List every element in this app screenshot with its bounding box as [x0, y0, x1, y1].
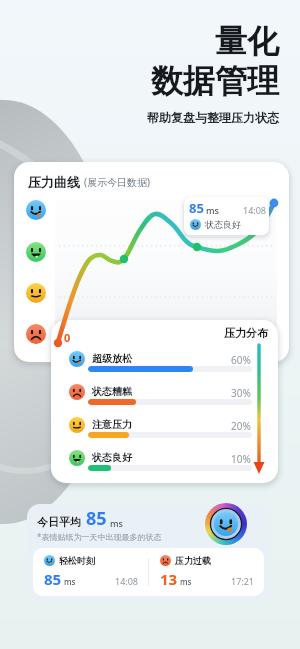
staticText: 量化: [215, 21, 279, 61]
staticText: 帮助复盘与整理压力状态: [147, 110, 279, 125]
staticText: 30%: [231, 386, 251, 400]
other: 压力等级: [251, 343, 267, 475]
staticText: ms: [206, 204, 219, 216]
staticText: 20%: [231, 419, 251, 433]
staticText: 10%: [231, 452, 251, 466]
staticText: (展示今日数据): [84, 175, 150, 189]
staticText: 压力过载: [175, 555, 211, 566]
staticText: 状态糟糕: [92, 385, 132, 398]
button[interactable]: 状态糟糕: [51, 378, 278, 411]
staticText: 轻松时刻: [59, 555, 95, 566]
staticText: 14:08: [243, 204, 267, 216]
staticText: 17:21: [231, 575, 255, 587]
staticText: 状态良好: [205, 219, 241, 230]
staticText: ms: [64, 576, 76, 587]
staticText: 60%: [231, 353, 251, 367]
button[interactable]: 今日表情贴纸: [205, 503, 247, 545]
button[interactable]: 压力过载: [149, 548, 264, 596]
button[interactable]: 超级放松: [51, 345, 278, 378]
staticText: 数据管理: [151, 61, 279, 101]
staticText: 今日平均: [37, 515, 81, 529]
staticText: 0: [64, 330, 71, 345]
staticText: ms: [180, 576, 192, 587]
staticText: 14:08: [115, 575, 139, 587]
staticText: 注意压力: [92, 418, 132, 431]
staticText: 85: [189, 199, 204, 217]
button[interactable]: 轻松时刻: [33, 548, 148, 596]
staticText: 超级放松: [92, 352, 132, 365]
staticText: ms: [110, 517, 123, 529]
staticText: 13: [160, 569, 178, 589]
staticText: 85: [44, 569, 62, 589]
staticText: 状态良好: [92, 451, 132, 464]
button[interactable]: 状态良好: [51, 444, 278, 477]
staticText: 压力曲线: [28, 174, 80, 190]
button[interactable]: 85: [184, 197, 269, 235]
staticText: 压力分布: [224, 326, 268, 340]
staticText: 85: [86, 506, 107, 531]
staticText: *表情贴纸为一天中出现最多的状态: [37, 531, 162, 542]
button[interactable]: 注意压力: [51, 411, 278, 444]
